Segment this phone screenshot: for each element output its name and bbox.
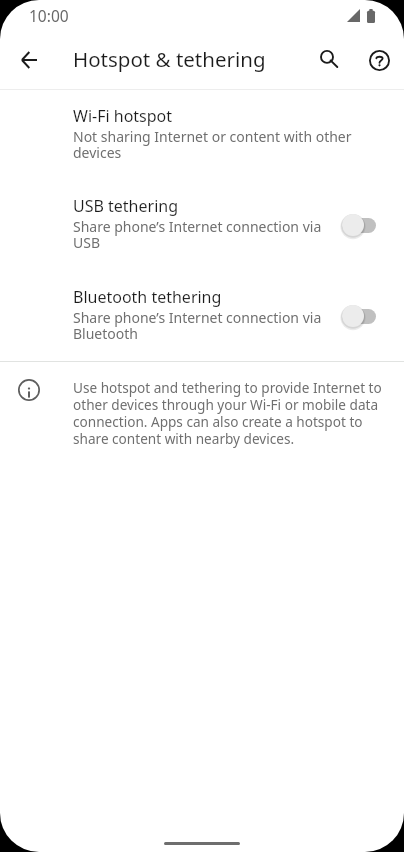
staticText: USB tethering [73, 196, 178, 216]
staticText: Share phone’s Internet connection via US… [73, 219, 325, 251]
button[interactable]: Search [305, 35, 353, 83]
staticText: Not sharing Internet or content with oth… [73, 129, 363, 161]
button[interactable]: Bluetooth tethering [0, 282, 404, 370]
button[interactable]: Help [355, 36, 403, 84]
staticText: Share phone’s Internet connection via Bl… [73, 310, 325, 342]
button[interactable]: USB tethering [0, 191, 404, 279]
button[interactable]: Toggle Bluetooth tethering [342, 304, 376, 328]
staticText: 10:00 [29, 9, 69, 25]
staticText: Hotspot & tethering [73, 48, 266, 72]
staticText: Bluetooth tethering [73, 287, 222, 307]
button[interactable]: Wi-Fi hotspot [0, 101, 404, 189]
button[interactable]: Back [5, 36, 53, 84]
staticText: Use hotspot and tethering to provide Int… [73, 380, 386, 448]
staticText: Wi-Fi hotspot [73, 106, 173, 126]
button[interactable]: Toggle USB tethering [342, 213, 376, 237]
